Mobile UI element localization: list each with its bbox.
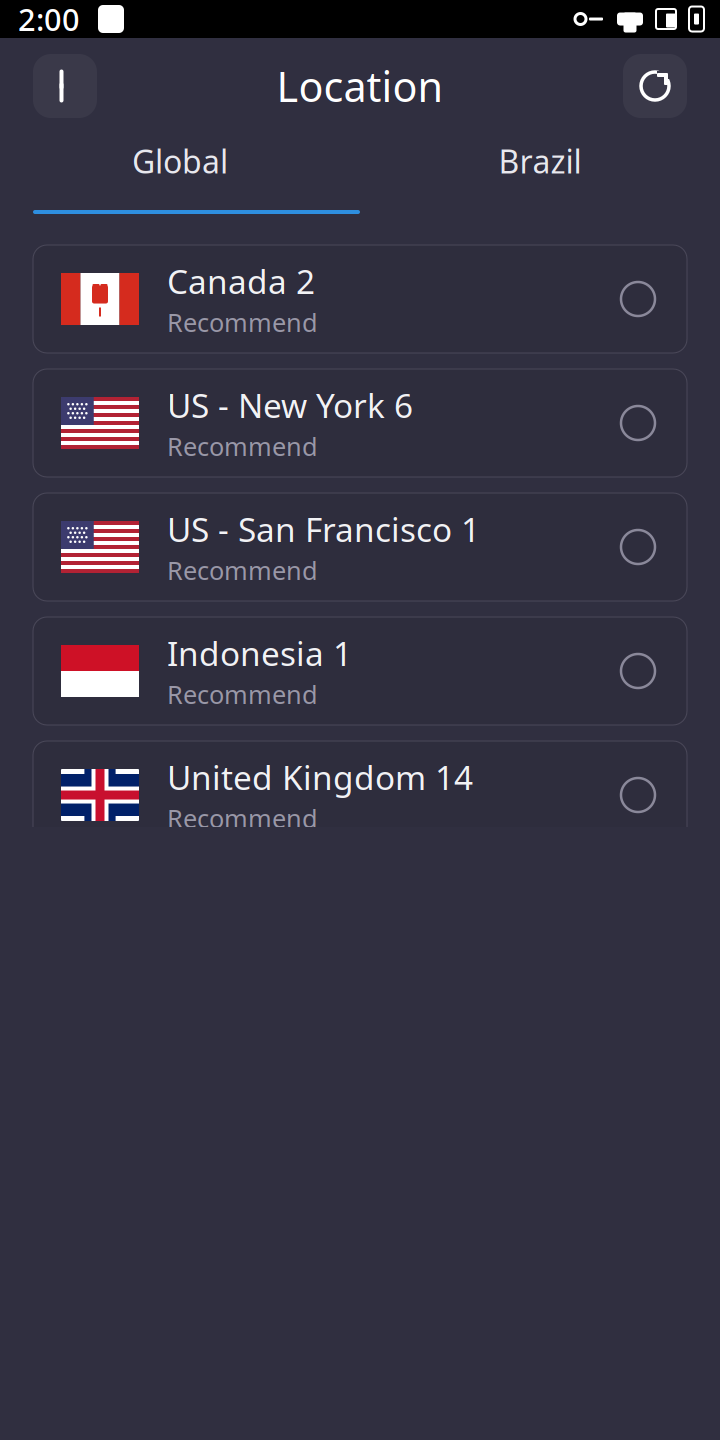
button[interactable]: US - San Francisco 1 — [33, 493, 687, 601]
button[interactable]: Global — [0, 134, 360, 188]
staticText: 2:00 — [18, 0, 80, 39]
staticText: United Kingdom 14 — [167, 755, 473, 799]
staticText: Recommend — [167, 429, 318, 463]
staticText: Recommend — [167, 801, 318, 835]
button[interactable]: United Kingdom 14 — [33, 741, 687, 849]
staticText: Brazil — [498, 140, 581, 182]
staticText: Recommend — [167, 677, 318, 711]
staticText: Recommend — [167, 305, 318, 339]
staticText: Location — [276, 59, 443, 113]
button[interactable]: Refresh — [623, 54, 687, 118]
staticText: US - San Francisco 1 — [167, 507, 480, 551]
button[interactable]: Back — [33, 54, 97, 118]
staticText: Indonesia 1 — [167, 631, 352, 675]
staticText: Recommend — [167, 553, 318, 587]
button[interactable]: Indonesia 1 — [33, 617, 687, 725]
button[interactable]: Canada 2 — [33, 245, 687, 353]
button[interactable]: US - New York 6 — [33, 369, 687, 477]
staticText: Canada 2 — [167, 259, 315, 303]
staticText: US - New York 6 — [167, 383, 413, 427]
staticText: Global — [132, 140, 228, 182]
button[interactable]: Brazil — [360, 134, 720, 188]
